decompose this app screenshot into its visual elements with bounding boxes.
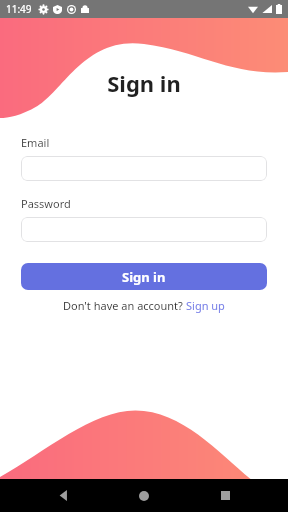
staticText: Don't have an account? <box>63 298 186 313</box>
staticText: Sign in <box>122 268 166 286</box>
button[interactable]: Home <box>127 479 161 512</box>
staticText: 11:49 <box>6 2 32 16</box>
button[interactable]: Recent apps <box>208 479 242 512</box>
button[interactable]: Sign up <box>186 298 225 313</box>
button[interactable]: Sign in <box>21 263 267 290</box>
staticText: Password <box>21 196 71 211</box>
staticText: Sign up <box>186 298 225 313</box>
staticText: Email <box>21 135 50 150</box>
button[interactable] <box>21 217 267 242</box>
button[interactable]: Back <box>47 479 81 512</box>
staticText: Sign in <box>0 68 288 98</box>
button[interactable] <box>21 156 267 181</box>
